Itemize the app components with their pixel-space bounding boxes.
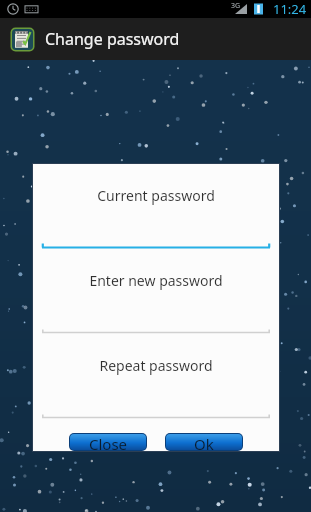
staticText: Enter new password xyxy=(89,271,223,290)
staticText: Repeat password xyxy=(99,356,213,375)
staticText: 3G xyxy=(231,1,241,11)
button[interactable]: App icon xyxy=(0,18,311,60)
button[interactable]: Close xyxy=(70,434,146,450)
staticText: Ok xyxy=(194,434,214,450)
staticText: Change password xyxy=(45,28,180,50)
staticText: Current password xyxy=(97,186,215,205)
staticText: Close xyxy=(89,434,128,450)
staticText: 11:24 xyxy=(273,0,307,18)
other: App icon xyxy=(10,27,35,52)
button[interactable]: Ok xyxy=(166,434,242,450)
